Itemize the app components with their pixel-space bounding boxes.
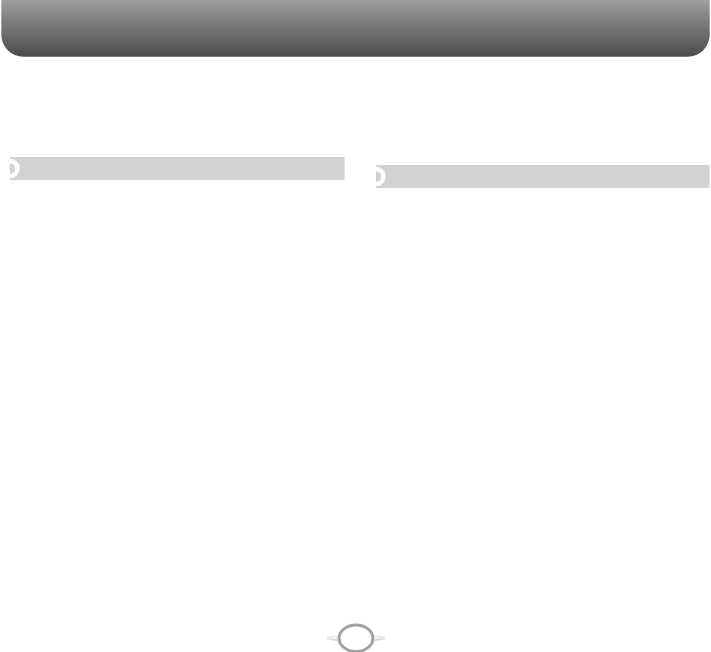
button[interactable]: Option two (365, 165, 710, 188)
button[interactable]: App bar (0, 0, 711, 58)
button[interactable]: Option one (0, 157, 345, 180)
button[interactable]: Home (306, 618, 406, 652)
